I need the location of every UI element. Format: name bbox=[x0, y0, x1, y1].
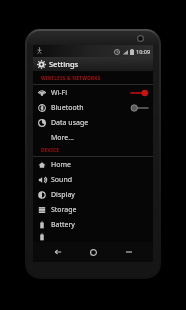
staticText: Storage bbox=[51, 205, 77, 215]
button[interactable]: Home bbox=[82, 242, 104, 262]
button[interactable]: More... bbox=[33, 130, 153, 145]
button[interactable]: Display bbox=[33, 187, 153, 202]
staticText: WIRELESS & NETWORKS bbox=[41, 75, 101, 82]
button[interactable]: Storage bbox=[33, 202, 153, 217]
button[interactable]: Settings bbox=[33, 57, 153, 71]
button[interactable]: Battery bbox=[33, 217, 153, 232]
staticText: Battery bbox=[51, 220, 75, 230]
staticText: DEVICE bbox=[41, 147, 60, 154]
staticText: Sound bbox=[51, 175, 73, 185]
button[interactable]: Back bbox=[47, 242, 69, 262]
button[interactable] bbox=[33, 232, 153, 242]
button[interactable]: Sound bbox=[33, 172, 153, 187]
staticText: Bluetooth bbox=[51, 103, 84, 113]
staticText: 10:09 bbox=[136, 48, 151, 55]
staticText: Wi-Fi bbox=[51, 88, 68, 98]
button[interactable]: Bluetooth bbox=[33, 100, 153, 115]
staticText: More... bbox=[51, 133, 74, 143]
staticText: Data usage bbox=[51, 118, 89, 128]
button[interactable]: Data usage bbox=[33, 115, 153, 130]
staticText: Settings bbox=[49, 59, 79, 69]
staticText: Home bbox=[51, 160, 71, 170]
button[interactable]: Wi-Fi bbox=[33, 85, 153, 100]
staticText: Display bbox=[51, 190, 75, 200]
button[interactable]: Recents bbox=[118, 242, 140, 262]
button[interactable]: Home bbox=[33, 157, 153, 172]
